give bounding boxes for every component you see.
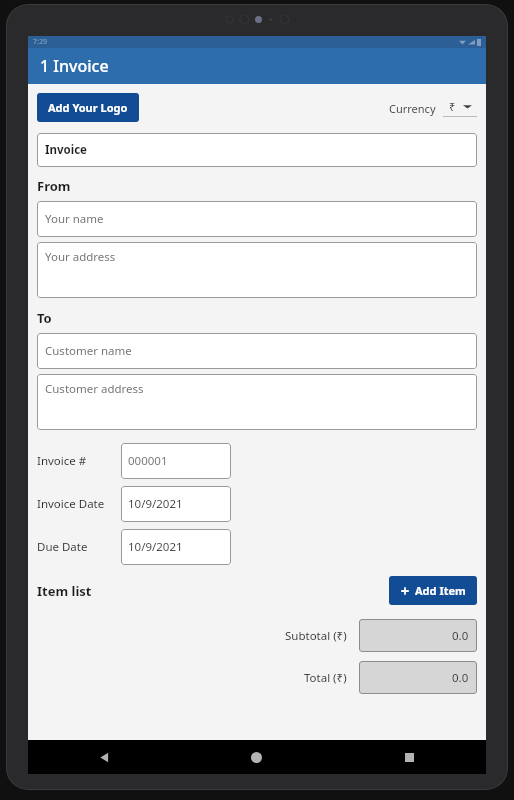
staticText: 7:29	[33, 37, 47, 47]
staticText: Invoice	[45, 142, 87, 158]
button[interactable]: Home	[180, 740, 333, 774]
staticText: From	[37, 177, 71, 195]
button[interactable]: Add Item	[389, 576, 477, 605]
button[interactable]: Recents	[333, 740, 486, 774]
button[interactable]: 10/9/2021	[121, 486, 231, 522]
button[interactable]: Invoice	[37, 133, 477, 167]
button[interactable]: Customer address	[37, 374, 477, 430]
staticText: Total (₹)	[304, 670, 347, 686]
button[interactable]: Customer name	[37, 333, 477, 369]
staticText: 0.0	[452, 670, 469, 686]
staticText: 10/9/2021	[128, 496, 183, 512]
staticText: Add Item	[415, 583, 466, 598]
staticText: To	[37, 309, 52, 327]
staticText: Subtotal (₹)	[285, 628, 347, 644]
staticText: 0.0	[452, 628, 469, 644]
staticText: 10/9/2021	[128, 539, 183, 555]
staticText: Your name	[45, 211, 104, 227]
other: Select currency	[463, 102, 472, 111]
staticText: Currency	[389, 101, 436, 116]
staticText: Invoice Date	[37, 496, 105, 512]
staticText: Customer name	[45, 343, 132, 359]
button[interactable]: Your address	[37, 242, 477, 298]
button[interactable]: Add Your Logo	[37, 93, 139, 122]
staticText: 000001	[128, 453, 168, 469]
button[interactable]: Back	[28, 740, 180, 774]
button[interactable]: 000001	[121, 443, 231, 479]
staticText: ₹	[449, 99, 456, 114]
button[interactable]: 10/9/2021	[121, 529, 231, 565]
staticText: Due Date	[37, 539, 88, 555]
staticText: Invoice #	[37, 453, 87, 469]
staticText: Item list	[37, 582, 92, 600]
staticText: Your address	[45, 249, 116, 265]
staticText: 1 Invoice	[40, 55, 109, 77]
button[interactable]: Currency	[389, 99, 477, 117]
staticText: Add Your Logo	[48, 100, 128, 115]
button[interactable]: Your name	[37, 201, 477, 237]
staticText: Customer address	[45, 381, 144, 397]
